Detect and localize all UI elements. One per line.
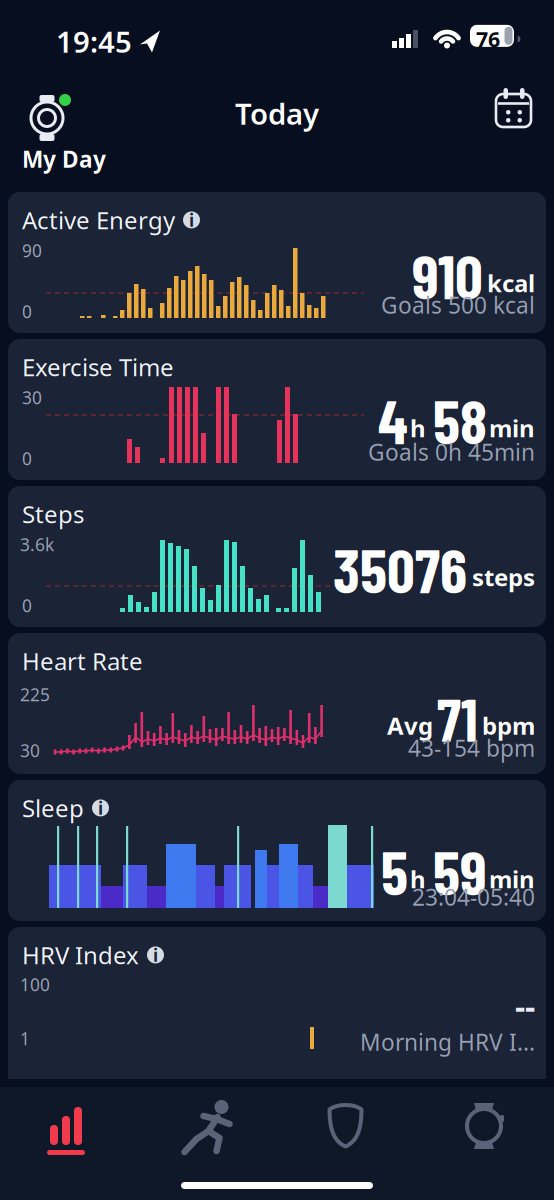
staticText: 58 (433, 383, 487, 457)
staticText: 71 (437, 683, 478, 753)
staticText: Today (235, 94, 319, 133)
staticText: Heart Rate (22, 645, 143, 677)
staticText: 43-154 bpm (408, 733, 535, 763)
staticText: i (189, 208, 194, 231)
staticText: i (98, 796, 103, 819)
staticText: Sleep (22, 792, 84, 824)
button[interactable]: Watch status (24, 86, 66, 134)
staticText: 1 (20, 1027, 30, 1050)
staticText: 5 (381, 834, 408, 908)
staticText: Exercise Time (22, 351, 174, 383)
staticText: kcal (487, 267, 535, 299)
staticText: 76 (476, 25, 500, 53)
staticText: 225 (20, 683, 50, 706)
staticText: h (410, 863, 426, 895)
staticText: 100 (20, 973, 50, 996)
staticText: min (489, 863, 535, 895)
button[interactable]: Calendar (496, 88, 532, 128)
button[interactable]: Health (276, 1095, 415, 1157)
staticText: h (410, 412, 426, 444)
staticText: bpm (482, 709, 535, 741)
staticText: Morning HRV I... (360, 1027, 535, 1057)
staticText: HRV Index (22, 939, 139, 971)
staticText: 90 (22, 239, 42, 262)
staticText: Steps (22, 498, 84, 530)
staticText: 23:04-05:40 (412, 882, 535, 912)
button[interactable]: Activity (0, 1095, 138, 1157)
staticText: i (153, 943, 158, 966)
staticText: 910 (412, 238, 483, 312)
staticText: Active Energy (22, 204, 175, 236)
staticText: -- (515, 985, 535, 1027)
staticText: steps (472, 561, 535, 593)
staticText: 35076 (333, 532, 467, 606)
staticText: Goals 0h 45min (368, 437, 535, 467)
staticText: 4 (378, 383, 408, 457)
staticText: 30 (22, 386, 42, 409)
staticText: 0 (22, 594, 32, 617)
staticText: Goals 500 kcal (381, 290, 535, 320)
staticText: 0 (22, 447, 32, 470)
staticText: 3.6k (20, 533, 54, 556)
staticText: Avg (387, 709, 433, 741)
button[interactable]: Workout (138, 1095, 276, 1157)
staticText: My Day (22, 144, 106, 174)
staticText: min (489, 412, 535, 444)
button[interactable]: Device (415, 1095, 554, 1157)
staticText: 30 (20, 739, 40, 762)
staticText: 0 (22, 300, 32, 323)
staticText: 19:45 (56, 22, 132, 61)
staticText: 59 (433, 834, 487, 908)
